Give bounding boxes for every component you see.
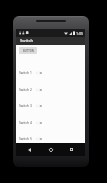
button[interactable]: Switch 4 (16, 114, 85, 130)
button[interactable]: Switch 5 (16, 130, 85, 146)
staticText: 1:05 (76, 31, 84, 36)
staticText: BUTTON (23, 49, 34, 53)
button[interactable]: Home (47, 143, 54, 156)
button[interactable]: Switch 2 (16, 81, 85, 97)
staticText: Switch 1 (19, 70, 32, 74)
staticText: Switch 4 (19, 120, 32, 124)
button[interactable]: Switch 3 (16, 97, 85, 113)
button[interactable]: Recents (68, 143, 75, 156)
button[interactable]: Back (26, 143, 33, 156)
staticText: Switch 2 (19, 87, 32, 91)
staticText: Switch 5 (19, 136, 32, 140)
staticText: Switch (20, 38, 34, 44)
staticText: Switch 3 (19, 103, 32, 107)
button[interactable]: BUTTON (19, 47, 37, 54)
button[interactable]: Switch 1 (16, 64, 85, 80)
